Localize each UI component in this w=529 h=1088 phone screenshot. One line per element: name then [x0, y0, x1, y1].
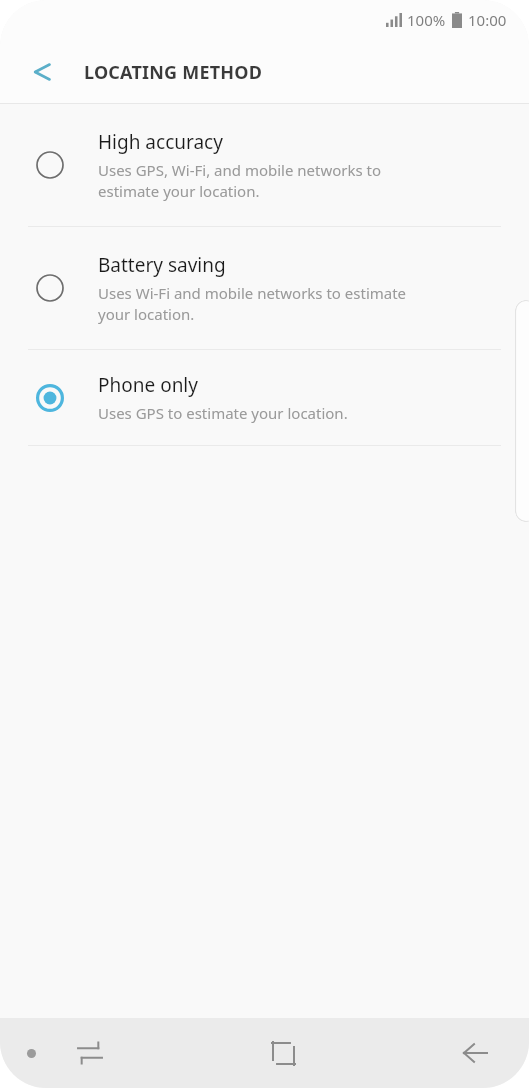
staticText: LOCATING METHOD — [84, 60, 263, 85]
staticText: 100% — [407, 10, 446, 30]
button[interactable]: Phone only — [0, 350, 529, 445]
button[interactable]: Home — [255, 1025, 311, 1081]
staticText: Uses Wi-Fi and mobile networks to estima… — [98, 283, 407, 325]
staticText: Phone only — [98, 372, 198, 398]
staticText: High accuracy — [98, 129, 223, 155]
button[interactable]: High accuracy — [0, 104, 529, 226]
button[interactable]: Back — [447, 1025, 503, 1081]
staticText: Uses GPS to estimate your location. — [98, 403, 348, 423]
button[interactable]: Navigate up — [20, 50, 64, 94]
staticText: Uses GPS, Wi-Fi, and mobile networks to … — [98, 160, 382, 202]
staticText: Battery saving — [98, 252, 226, 278]
button[interactable]: Battery saving — [0, 227, 529, 349]
staticText: 10:00 — [468, 10, 507, 30]
button[interactable]: Recent apps — [62, 1025, 118, 1081]
